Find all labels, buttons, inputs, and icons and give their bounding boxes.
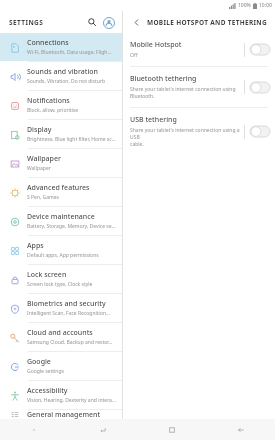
staticText: Device maintenance bbox=[27, 212, 95, 222]
button[interactable]: Lock screen bbox=[0, 265, 122, 293]
staticText: Apps bbox=[27, 241, 44, 251]
button[interactable]: Apps bbox=[0, 236, 122, 264]
staticText: S Pen, Games bbox=[27, 194, 59, 201]
staticText: Bluetooth. bbox=[130, 93, 155, 100]
staticText: Brightness, Blue light filter, Home sc… bbox=[27, 136, 116, 143]
button[interactable]: Home bbox=[137, 419, 206, 440]
button[interactable]: Bluetooth tethering bbox=[123, 67, 275, 107]
staticText: Mobile Hotspot bbox=[130, 40, 182, 50]
button[interactable]: USB tethering switch bbox=[250, 126, 270, 137]
button[interactable]: Recents bbox=[68, 419, 137, 440]
staticText: MOBILE HOTSPOT AND TETHERING bbox=[147, 18, 267, 27]
staticText: Biometrics and security bbox=[27, 299, 106, 309]
button[interactable]: Search bbox=[85, 15, 99, 29]
staticText: Sounds, Vibration, Do not disturb bbox=[27, 78, 106, 85]
button[interactable]: Accessibility bbox=[0, 381, 122, 409]
staticText: Samsung Cloud, Backup and restor… bbox=[27, 339, 113, 346]
button[interactable]: Biometrics and security bbox=[0, 294, 122, 322]
staticText: Notifications bbox=[27, 96, 70, 106]
button[interactable]: Account bbox=[101, 15, 116, 30]
staticText: Share your tablet's internet connection … bbox=[130, 127, 241, 141]
staticText: 10:00 bbox=[259, 2, 272, 9]
button[interactable]: Notifications bbox=[0, 91, 122, 119]
button[interactable]: USB tethering bbox=[123, 108, 275, 155]
staticText: Bluetooth tethering bbox=[130, 74, 197, 84]
staticText: Block, allow, prioritise bbox=[27, 107, 79, 114]
button[interactable]: Bluetooth tethering switch bbox=[250, 82, 270, 93]
button[interactable]: Wallpaper bbox=[0, 149, 122, 177]
staticText: Wallpaper bbox=[27, 154, 61, 164]
staticText: Connections bbox=[27, 38, 69, 48]
button[interactable]: General management bbox=[0, 410, 122, 419]
staticText: Intelligent Scan, Face Recognition… bbox=[27, 310, 110, 317]
button[interactable]: Device maintenance bbox=[0, 207, 122, 235]
staticText: Wi-Fi, Bluetooth, Data usage, Fligh… bbox=[27, 49, 112, 56]
staticText: Default apps, App permissions bbox=[27, 252, 99, 259]
staticText: Google bbox=[27, 357, 51, 367]
staticText: Off bbox=[130, 52, 138, 59]
button[interactable]: Mobile Hotspot bbox=[123, 33, 275, 66]
staticText: Battery, Storage, Memory, Device se… bbox=[27, 223, 116, 230]
button[interactable]: Mobile Hotspot switch bbox=[250, 44, 270, 55]
staticText: USB tethering bbox=[130, 115, 177, 125]
staticText: Vision, Hearing, Dexterity and intera… bbox=[27, 397, 116, 404]
staticText: Lock screen bbox=[27, 270, 67, 280]
staticText: Share your tablet's internet connection … bbox=[130, 86, 236, 93]
button[interactable]: Back bbox=[129, 15, 143, 29]
staticText: Cloud and accounts bbox=[27, 328, 93, 338]
staticText: Wallpaper bbox=[27, 165, 51, 172]
button[interactable]: Advanced features bbox=[0, 178, 122, 206]
staticText: Google settings bbox=[27, 368, 64, 375]
button[interactable]: Connections bbox=[0, 33, 122, 61]
button[interactable]: Back bbox=[206, 419, 275, 440]
staticText: Screen lock type, Clock style bbox=[27, 281, 93, 288]
staticText: Display bbox=[27, 125, 52, 135]
staticText: SETTINGS bbox=[9, 18, 44, 27]
staticText: General management bbox=[27, 410, 101, 419]
staticText: 100% bbox=[238, 2, 251, 9]
staticText: Advanced features bbox=[27, 183, 90, 193]
button[interactable]: Google bbox=[0, 352, 122, 380]
button[interactable]: Display bbox=[0, 120, 122, 148]
button[interactable]: Sounds and vibration bbox=[0, 62, 122, 90]
button[interactable]: Cloud and accounts bbox=[0, 323, 122, 351]
staticText: Sounds and vibration bbox=[27, 67, 99, 77]
staticText: Accessibility bbox=[27, 386, 68, 396]
staticText: cable. bbox=[130, 141, 144, 148]
